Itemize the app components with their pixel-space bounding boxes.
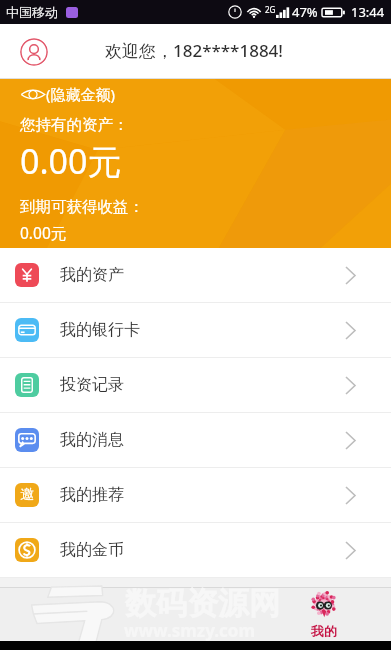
staticText: 数码资源网: [125, 584, 280, 623]
staticText: 邀: [20, 486, 34, 504]
button[interactable]: 投资记录: [0, 358, 391, 412]
staticText: 欢迎您，182****1884!: [105, 39, 283, 62]
staticText: 0.00元: [20, 138, 122, 184]
staticText: 投资记录: [60, 375, 124, 395]
staticText: 0.00元: [20, 222, 67, 243]
staticText: 我的推荐: [60, 485, 124, 505]
button[interactable]: 我的: [302, 593, 346, 639]
staticText: (隐藏金额): [46, 84, 116, 104]
staticText: 我的消息: [60, 430, 124, 450]
staticText: 中国移动: [6, 4, 58, 20]
staticText: www.smzy.com: [124, 619, 256, 642]
staticText: 您持有的资产：: [20, 115, 129, 135]
staticText: 我的资产: [60, 265, 124, 285]
button[interactable]: 我的银行卡: [0, 303, 391, 357]
staticText: 到期可获得收益：: [20, 197, 144, 217]
staticText: 47%: [292, 3, 318, 21]
button[interactable]: (隐藏金额): [20, 84, 116, 104]
button[interactable]: 我的金币: [0, 523, 391, 577]
staticText: 13:44: [351, 3, 385, 21]
button[interactable]: 我的消息: [0, 413, 391, 467]
button[interactable]: 邀: [0, 468, 391, 522]
staticText: 我的银行卡: [60, 320, 140, 340]
button[interactable]: Profile: [20, 38, 48, 66]
staticText: 我的: [311, 623, 337, 639]
staticText: 我的金币: [60, 540, 124, 560]
staticText: 2G: [265, 4, 276, 15]
button[interactable]: 我的资产: [0, 248, 391, 302]
